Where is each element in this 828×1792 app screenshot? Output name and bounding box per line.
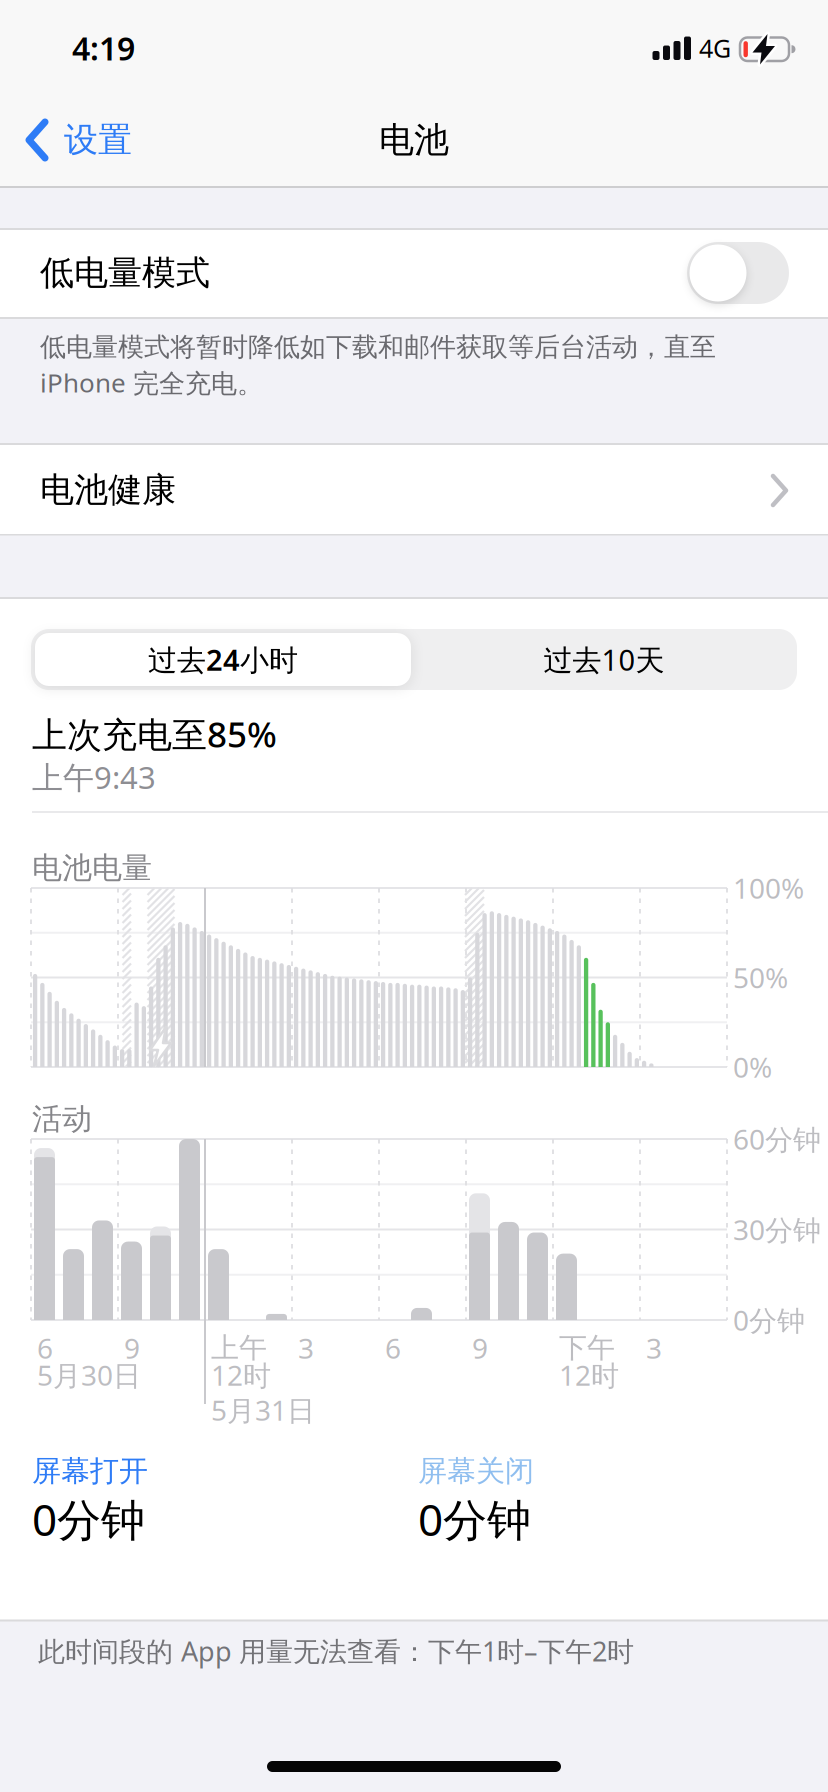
staticText: 4G (699, 31, 731, 65)
staticText: 上午9:43 (32, 756, 156, 798)
button[interactable]: 过去24小时 (35, 633, 411, 686)
staticText: 5月30日 (37, 1356, 141, 1394)
staticText: 屏幕关闭 (418, 1453, 534, 1489)
staticText: 低电量模式将暂时降低如下载和邮件获取等后台活动，直至 (40, 331, 716, 363)
staticText: 活动 (32, 1100, 92, 1138)
button[interactable]: 返回设置 (26, 112, 132, 168)
staticText: 此时间段的 App 用量无法查看：下午1时–下午2时 (38, 1633, 634, 1669)
button[interactable]: 过去10天 (414, 631, 794, 688)
staticText: 3 (298, 1329, 314, 1367)
staticText: 0分钟 (32, 1489, 145, 1549)
staticText: 9 (124, 1329, 140, 1367)
staticText: 上次充电至85% (32, 710, 277, 758)
staticText: 30分钟 (733, 1210, 821, 1248)
staticText: 0分钟 (733, 1301, 805, 1339)
staticText: 电池健康 (40, 469, 176, 511)
staticText: 5月31日 (211, 1391, 315, 1429)
staticText: 下午 (559, 1330, 615, 1366)
staticText: 低电量模式 (40, 252, 210, 294)
staticText: 6 (385, 1329, 401, 1367)
staticText: 0% (733, 1048, 772, 1086)
staticText: 上午 (211, 1330, 267, 1366)
staticText: 6 (37, 1329, 53, 1367)
staticText: 电池电量 (32, 849, 152, 887)
staticText: 3 (646, 1329, 662, 1367)
staticText: 0分钟 (418, 1489, 531, 1549)
staticText: 设置 (64, 119, 132, 161)
staticText: 60分钟 (733, 1120, 821, 1158)
button[interactable]: 电池健康 (0, 445, 828, 534)
staticText: 12时 (211, 1356, 271, 1394)
staticText: 屏幕打开 (32, 1453, 148, 1489)
staticText: 50% (733, 958, 788, 996)
staticText: 电池 (379, 118, 449, 162)
staticText: 9 (472, 1329, 488, 1367)
staticText: 12时 (559, 1356, 619, 1394)
staticText: iPhone 完全充电。 (40, 365, 263, 400)
staticText: 100% (733, 869, 804, 907)
staticText: 过去10天 (543, 640, 664, 679)
staticText: 4:19 (72, 26, 135, 70)
staticText: 过去24小时 (148, 640, 298, 679)
button[interactable]: 低电量模式 (687, 242, 789, 304)
